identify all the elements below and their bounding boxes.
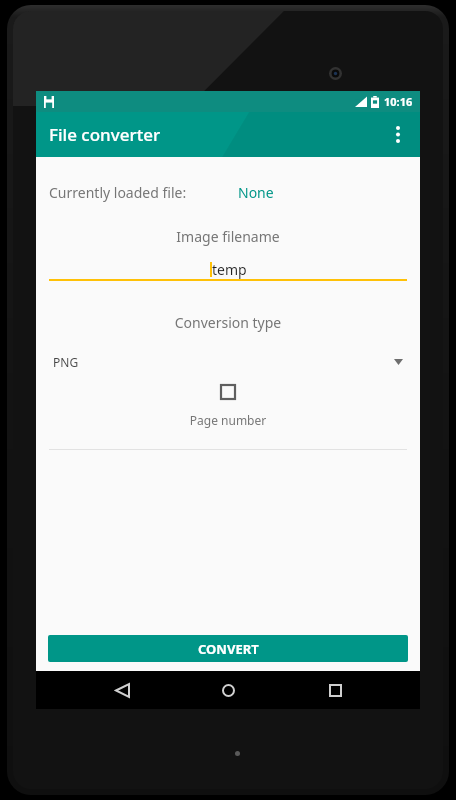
button[interactable]: Page number checkbox (215, 379, 241, 405)
staticText: 10:16 (384, 94, 413, 109)
staticText: Image filename (36, 227, 420, 246)
staticText: CONVERT (198, 640, 259, 658)
button[interactable]: temp (49, 259, 407, 279)
staticText: None (238, 183, 274, 202)
staticText: File converter (49, 123, 161, 146)
staticText: temp (212, 260, 247, 279)
button[interactable]: Home (207, 671, 249, 709)
staticText: Conversion type (36, 313, 420, 332)
button[interactable]: CONVERT (48, 635, 408, 662)
button[interactable]: Recent apps (314, 671, 356, 709)
button[interactable]: Back (101, 671, 143, 709)
button[interactable]: None (238, 183, 274, 202)
button[interactable]: PNG (36, 349, 420, 375)
staticText: Currently loaded file: (49, 183, 187, 202)
staticText: Page number (36, 412, 420, 428)
button[interactable]: More options (375, 112, 420, 157)
staticText: PNG (53, 354, 79, 370)
